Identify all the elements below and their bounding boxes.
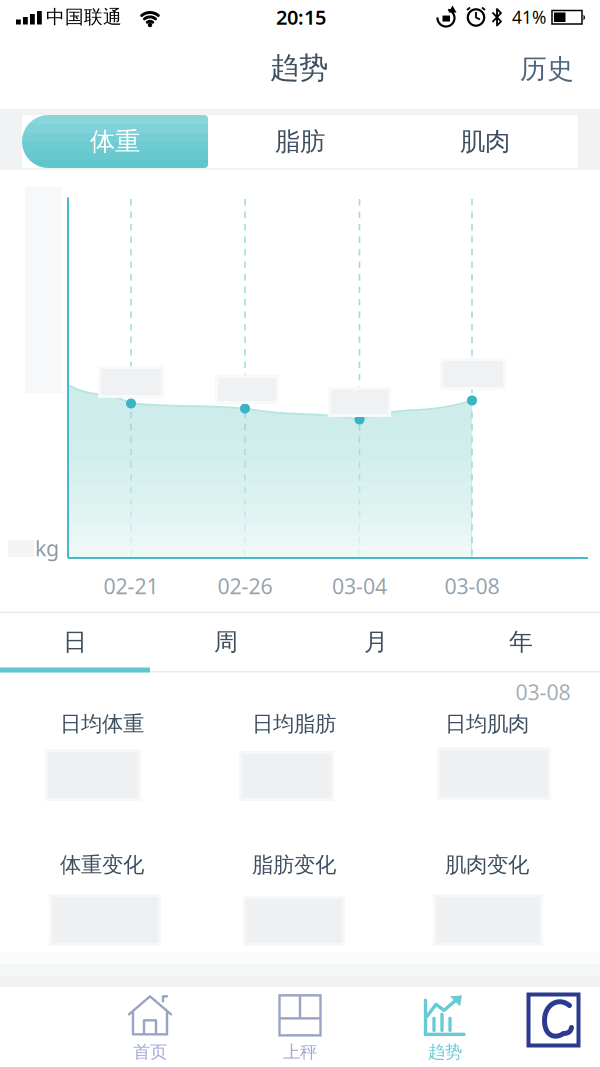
button[interactable]: 月 (301, 613, 451, 671)
button[interactable]: 周 (151, 613, 301, 671)
staticText: 脂肪 (275, 126, 325, 157)
button[interactable]: 历史 (507, 44, 587, 94)
staticText: 03-04 (332, 572, 387, 600)
staticText: 03-08 (444, 572, 499, 600)
staticText: 体重 (90, 126, 140, 157)
staticText: 体重变化 (60, 852, 144, 878)
button[interactable]: 肌肉 (392, 115, 578, 168)
staticText: 脂肪变化 (252, 852, 336, 878)
staticText: 周 (214, 627, 238, 657)
button[interactable]: 脂肪 (207, 115, 393, 168)
staticText: 上秤 (283, 1041, 317, 1063)
staticText: 年 (509, 627, 533, 657)
staticText: 03-08 (515, 678, 570, 706)
button[interactable]: 年 (446, 613, 596, 671)
button[interactable]: 日 (0, 613, 150, 671)
staticText: 日 (63, 627, 87, 657)
staticText: 41% (512, 5, 546, 28)
staticText: 02-26 (217, 572, 272, 600)
staticText: 趋势 (428, 1041, 462, 1063)
staticText: 日均脂肪 (252, 711, 336, 737)
staticText: 20:15 (276, 4, 326, 30)
staticText: 02-21 (103, 572, 158, 600)
staticText: 趋势 (270, 50, 328, 86)
staticText: 肌肉 (460, 126, 510, 157)
staticText: 日均体重 (60, 711, 144, 737)
button[interactable]: 趋势 (390, 991, 500, 1065)
button[interactable]: 品牌 (525, 991, 581, 1048)
staticText: 首页 (133, 1041, 167, 1063)
staticText: 日均肌肉 (445, 711, 529, 737)
staticText: kg (35, 534, 59, 562)
staticText: 历史 (520, 53, 574, 85)
button[interactable]: 首页 (95, 991, 205, 1065)
staticText: 月 (364, 627, 388, 657)
button[interactable]: 体重 (22, 115, 208, 168)
staticText: 中国联通 (46, 5, 122, 28)
button[interactable]: 上秤 (245, 991, 355, 1065)
staticText: 肌肉变化 (445, 852, 529, 878)
